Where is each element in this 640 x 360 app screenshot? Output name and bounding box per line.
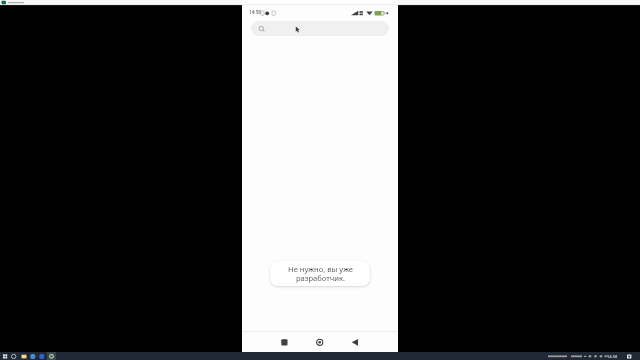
button[interactable] xyxy=(278,336,292,350)
staticText: 14:58 xyxy=(607,354,618,359)
button[interactable] xyxy=(313,336,327,350)
staticText: Не нужно, вы уже разработчик. xyxy=(288,264,353,284)
button[interactable] xyxy=(251,21,389,36)
button[interactable] xyxy=(348,336,362,350)
staticText: 14:58 xyxy=(249,9,262,15)
button[interactable] xyxy=(47,352,56,360)
